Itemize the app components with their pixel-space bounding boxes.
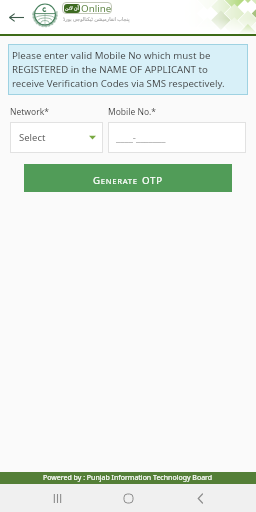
button[interactable]: Back	[185, 484, 215, 512]
button[interactable]: GENERATE OTP	[24, 164, 232, 192]
staticText: ____-_______	[116, 131, 166, 144]
button[interactable]: Home	[113, 484, 143, 512]
staticText: Select	[19, 131, 46, 144]
button[interactable]: Recent apps	[42, 484, 72, 512]
button[interactable]: Back	[4, 5, 28, 29]
staticText: GENERATE OTP	[93, 169, 163, 188]
staticText: Online	[81, 2, 112, 14]
staticText: Powered by : Punjab Information Technolo…	[43, 473, 213, 483]
staticText: Mobile No.*	[108, 106, 157, 118]
staticText: آن لائن	[65, 5, 79, 12]
button[interactable]: ____-_______	[108, 122, 246, 153]
staticText: Please enter valid Mobile No which must …	[12, 49, 225, 90]
staticText: پنجاب انفارمیشن ٹیکنالوجی بورڈ	[63, 16, 130, 23]
staticText: Network*	[10, 106, 49, 118]
button[interactable]: Select	[10, 122, 103, 153]
